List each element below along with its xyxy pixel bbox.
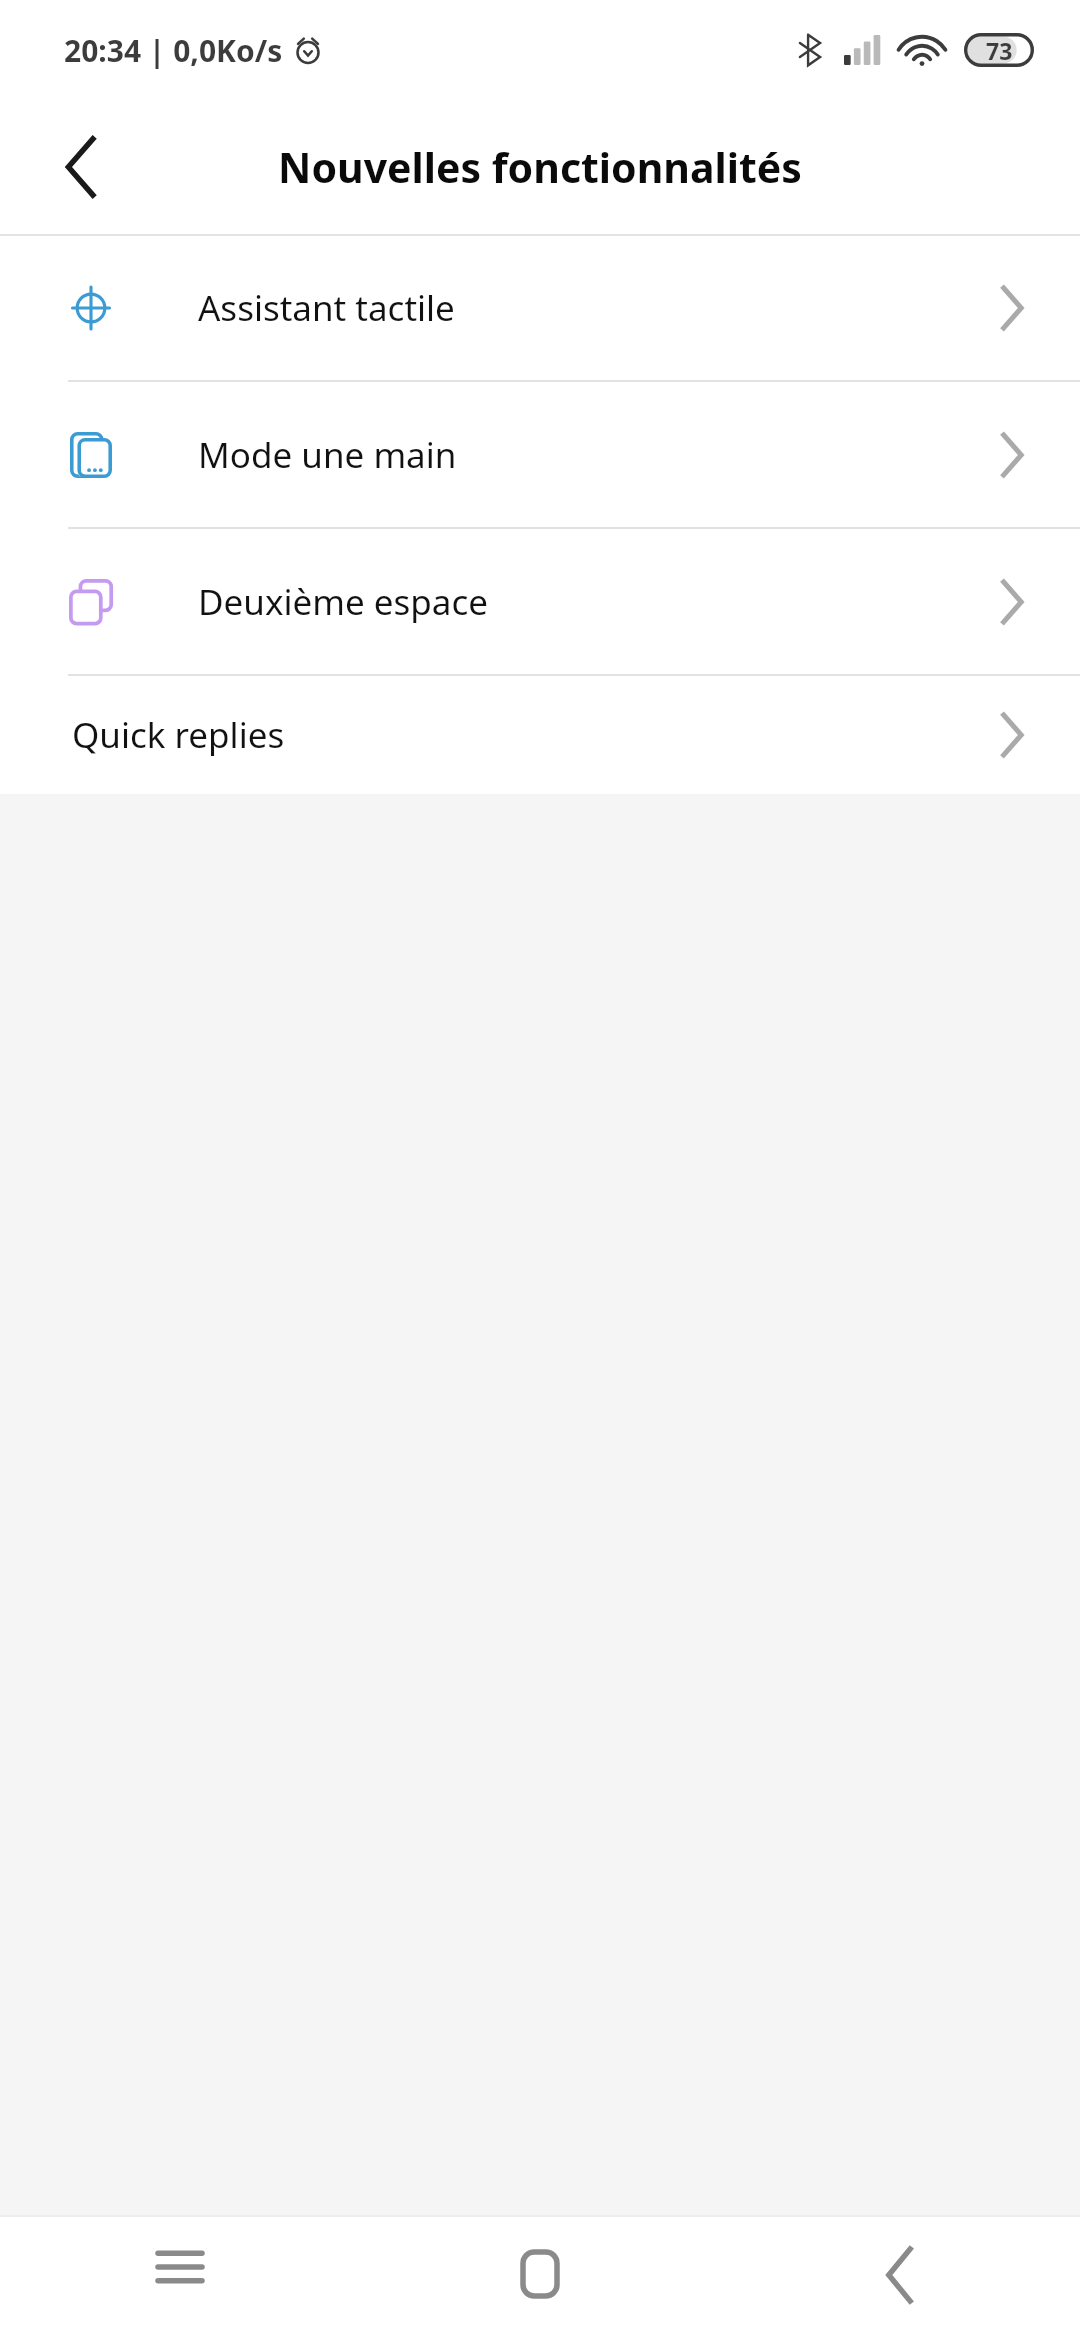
staticText: Quick replies — [72, 711, 988, 759]
button[interactable]: Home — [360, 2217, 720, 2340]
staticText: 20:34 | 0,0Ko/s — [64, 30, 283, 71]
button[interactable]: Quick replies — [0, 676, 1080, 794]
staticText: 73 — [986, 35, 1013, 66]
button[interactable]: Back — [30, 115, 134, 219]
button[interactable]: Recent apps — [0, 2217, 360, 2340]
button[interactable]: Assistant tactile — [0, 236, 1080, 380]
staticText: Mode une main — [198, 431, 988, 479]
button[interactable]: Back — [720, 2217, 1080, 2340]
staticText: Nouvelles fonctionnalités — [278, 139, 802, 195]
staticText: Deuxième espace — [198, 578, 988, 626]
button[interactable]: Deuxième espace — [0, 529, 1080, 674]
staticText: Assistant tactile — [198, 284, 988, 332]
button[interactable]: Mode une main — [0, 382, 1080, 527]
